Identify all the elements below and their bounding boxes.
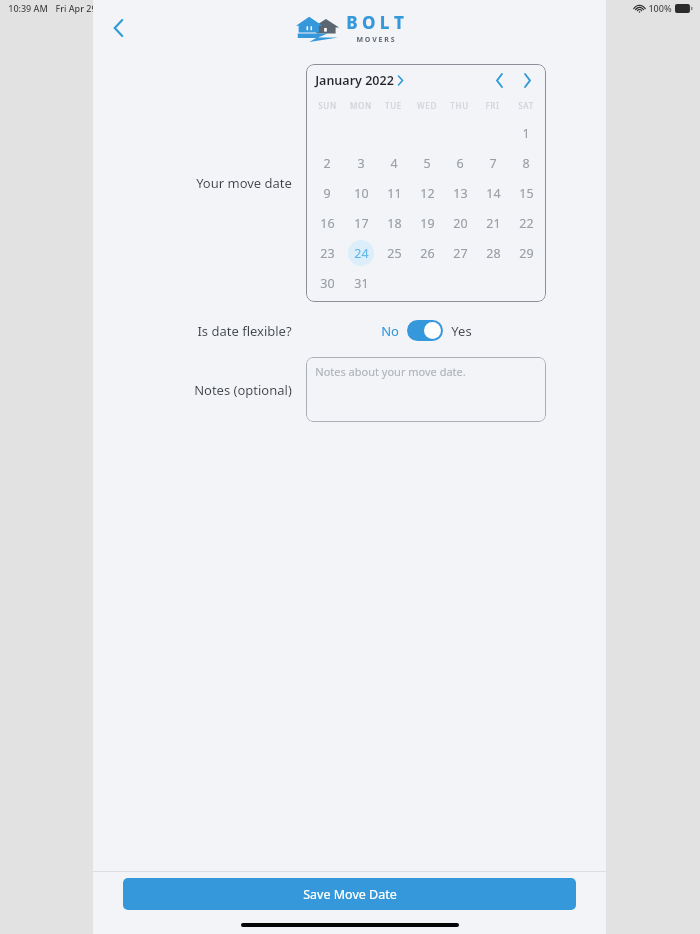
button[interactable]: 13 bbox=[447, 180, 473, 206]
staticText: Yes bbox=[451, 322, 472, 340]
button[interactable]: 15 bbox=[513, 180, 539, 206]
staticText: No bbox=[381, 322, 399, 340]
button[interactable]: 8 bbox=[513, 150, 539, 176]
staticText: 11 bbox=[387, 185, 402, 202]
staticText: B O L T bbox=[346, 11, 404, 34]
staticText: 10:39 AM bbox=[8, 2, 48, 14]
staticText: 2 bbox=[323, 155, 331, 172]
staticText: Fri Apr 29 bbox=[55, 2, 97, 14]
staticText: 23 bbox=[320, 245, 335, 262]
button[interactable]: 25 bbox=[381, 240, 407, 266]
staticText: 8 bbox=[522, 155, 530, 172]
staticText: Notes (optional) bbox=[194, 381, 292, 399]
button[interactable]: 28 bbox=[480, 240, 506, 266]
staticText: Save Move Date bbox=[303, 886, 397, 903]
staticText: 31 bbox=[354, 275, 369, 292]
button[interactable]: 12 bbox=[414, 180, 440, 206]
button[interactable]: 26 bbox=[414, 240, 440, 266]
button[interactable]: Back bbox=[101, 11, 135, 45]
button[interactable]: 19 bbox=[414, 210, 440, 236]
button[interactable]: B O L T bbox=[296, 11, 404, 45]
button[interactable]: 29 bbox=[513, 240, 539, 266]
button[interactable]: 16 bbox=[314, 210, 340, 236]
button[interactable]: 4 bbox=[381, 150, 407, 176]
button[interactable]: 21 bbox=[480, 210, 506, 236]
button[interactable]: 3 bbox=[348, 150, 374, 176]
staticText: 21 bbox=[486, 215, 501, 232]
staticText: Notes about your move date. bbox=[315, 364, 466, 379]
staticText: 16 bbox=[320, 215, 335, 232]
button[interactable]: Notes about your move date. bbox=[306, 357, 546, 422]
staticText: 30 bbox=[320, 275, 335, 292]
staticText: 7 bbox=[489, 155, 497, 172]
staticText: 27 bbox=[453, 245, 468, 262]
staticText: SAT bbox=[518, 100, 534, 111]
button[interactable]: 14 bbox=[480, 180, 506, 206]
staticText: 12 bbox=[420, 185, 435, 202]
button[interactable]: 10 bbox=[348, 180, 374, 206]
staticText: 19 bbox=[420, 215, 435, 232]
staticText: 22 bbox=[519, 215, 534, 232]
button[interactable]: Save Move Date bbox=[123, 878, 576, 910]
staticText: MON bbox=[350, 100, 372, 111]
staticText: 18 bbox=[387, 215, 402, 232]
staticText: 26 bbox=[420, 245, 435, 262]
staticText: 100% bbox=[648, 2, 672, 14]
staticText: 28 bbox=[486, 245, 501, 262]
button[interactable]: 18 bbox=[381, 210, 407, 236]
staticText: 5 bbox=[423, 155, 431, 172]
staticText: 1 bbox=[522, 125, 530, 142]
staticText: TUE bbox=[385, 100, 402, 111]
staticText: 9 bbox=[323, 185, 331, 202]
staticText: 29 bbox=[519, 245, 534, 262]
button[interactable]: January 2022 bbox=[315, 72, 403, 89]
staticText: 6 bbox=[456, 155, 464, 172]
staticText: WED bbox=[417, 100, 437, 111]
button[interactable]: Previous month bbox=[489, 70, 509, 90]
staticText: 3 bbox=[357, 155, 365, 172]
button[interactable]: 20 bbox=[447, 210, 473, 236]
staticText: 20 bbox=[453, 215, 468, 232]
button[interactable]: 30 bbox=[314, 270, 340, 296]
button[interactable]: 24 bbox=[348, 240, 374, 266]
staticText: Your move date bbox=[196, 174, 292, 192]
button[interactable]: 2 bbox=[314, 150, 340, 176]
staticText: M O V E R S bbox=[356, 35, 395, 45]
staticText: 10 bbox=[354, 185, 369, 202]
button[interactable]: 6 bbox=[447, 150, 473, 176]
staticText: January 2022 bbox=[315, 72, 394, 89]
staticText: Is date flexible? bbox=[197, 322, 292, 340]
button[interactable]: 23 bbox=[314, 240, 340, 266]
button[interactable]: 17 bbox=[348, 210, 374, 236]
staticText: 4 bbox=[390, 155, 398, 172]
button[interactable]: Next month bbox=[517, 70, 537, 90]
staticText: 14 bbox=[486, 185, 501, 202]
staticText: 25 bbox=[387, 245, 402, 262]
staticText: 24 bbox=[354, 245, 369, 262]
button[interactable]: 31 bbox=[348, 270, 374, 296]
button[interactable]: 9 bbox=[314, 180, 340, 206]
button[interactable]: 27 bbox=[447, 240, 473, 266]
button[interactable]: 7 bbox=[480, 150, 506, 176]
button[interactable]: 22 bbox=[513, 210, 539, 236]
button[interactable]: 11 bbox=[381, 180, 407, 206]
staticText: THU bbox=[450, 100, 469, 111]
staticText: FRI bbox=[485, 100, 500, 111]
button[interactable]: 5 bbox=[414, 150, 440, 176]
staticText: 17 bbox=[354, 215, 369, 232]
staticText: 13 bbox=[453, 185, 468, 202]
button[interactable]: 1 bbox=[513, 120, 539, 146]
button[interactable]: Date flexible toggle bbox=[407, 320, 443, 341]
staticText: SUN bbox=[318, 100, 337, 111]
staticText: 15 bbox=[519, 185, 534, 202]
